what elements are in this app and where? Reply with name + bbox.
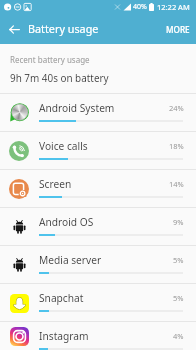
staticText: Screen	[39, 177, 72, 191]
staticText: 14%	[169, 179, 184, 189]
button[interactable]: Voice calls	[0, 132, 196, 169]
staticText: Battery usage	[28, 21, 99, 36]
button[interactable]: Media server	[0, 246, 196, 283]
staticText: Android OS	[39, 215, 94, 229]
staticText: Android System	[39, 101, 115, 115]
staticText: Instagram	[39, 329, 89, 343]
staticText: 40%	[133, 2, 147, 12]
button[interactable]: MORE	[158, 16, 196, 43]
staticText: 18%	[169, 141, 184, 151]
staticText: 4%	[173, 331, 184, 341]
button[interactable]: Screen	[0, 170, 196, 207]
staticText: Snapchat	[39, 291, 84, 305]
staticText: 5%	[173, 293, 184, 303]
staticText: 9%	[173, 217, 184, 227]
button[interactable]: Android OS	[0, 208, 196, 245]
button[interactable]: Android System	[0, 94, 196, 131]
button[interactable]: Snapchat	[0, 284, 196, 321]
staticText: 9h 7m 40s on battery	[10, 71, 109, 84]
staticText: 12:22 AM	[157, 2, 190, 12]
button[interactable]: Back	[0, 15, 28, 43]
staticText: Recent battery usage	[10, 54, 90, 65]
staticText: Media server	[39, 253, 102, 267]
button[interactable]: Instagram	[0, 322, 196, 350]
staticText: 5%	[173, 255, 184, 265]
staticText: MORE	[166, 24, 190, 35]
staticText: Voice calls	[39, 139, 88, 153]
staticText: 24%	[169, 103, 184, 113]
